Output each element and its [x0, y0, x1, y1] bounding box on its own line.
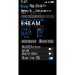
- button[interactable]: Notify before arrival: [21, 47, 54, 51]
- staticText: 12.4 mi: [21, 30, 32, 33]
- staticText: Distance: [21, 28, 32, 31]
- staticText: Market St → Embarcadero: [21, 9, 52, 13]
- staticText: on time · 24 min: [21, 25, 45, 28]
- staticText: Platform: [37, 31, 44, 38]
- staticText: Notify before arrival: [22, 45, 41, 53]
- staticText: C: [37, 35, 39, 38]
- staticText: Today · Morning commute: [21, 5, 43, 12]
- staticText: Avoid stairs: [22, 52, 37, 55]
- staticText: Transfers: [21, 32, 32, 36]
- staticText: 9:48 AM: [21, 20, 41, 27]
- staticText: Share trip: [39, 40, 53, 43]
- button[interactable]: Back to Routes: [18, 4, 34, 8]
- staticText: 1 stop: [21, 35, 30, 38]
- staticText: Directions: [22, 40, 36, 43]
- staticText: Routes: [22, 4, 32, 7]
- button[interactable]: Directions: [21, 39, 37, 43]
- staticText: ESTIMATED ARRIVAL: [21, 18, 45, 22]
- button[interactable]: Share live ETA: [21, 56, 54, 60]
- staticText: BART · Line 12: [21, 11, 42, 15]
- staticText: Live departures: [22, 15, 43, 18]
- staticText: Trip Details: [29, 4, 45, 7]
- button[interactable]: Live departures: [21, 15, 54, 18]
- staticText: OPTIONS: [21, 44, 32, 47]
- staticText: 9:41: [21, 0, 28, 4]
- staticText: Fare: [37, 28, 42, 31]
- button[interactable]: Avoid stairs: [21, 51, 54, 56]
- staticText: Share live ETA: [22, 56, 40, 60]
- staticText: $4.50: [37, 28, 44, 35]
- button[interactable]: Share trip: [38, 39, 54, 43]
